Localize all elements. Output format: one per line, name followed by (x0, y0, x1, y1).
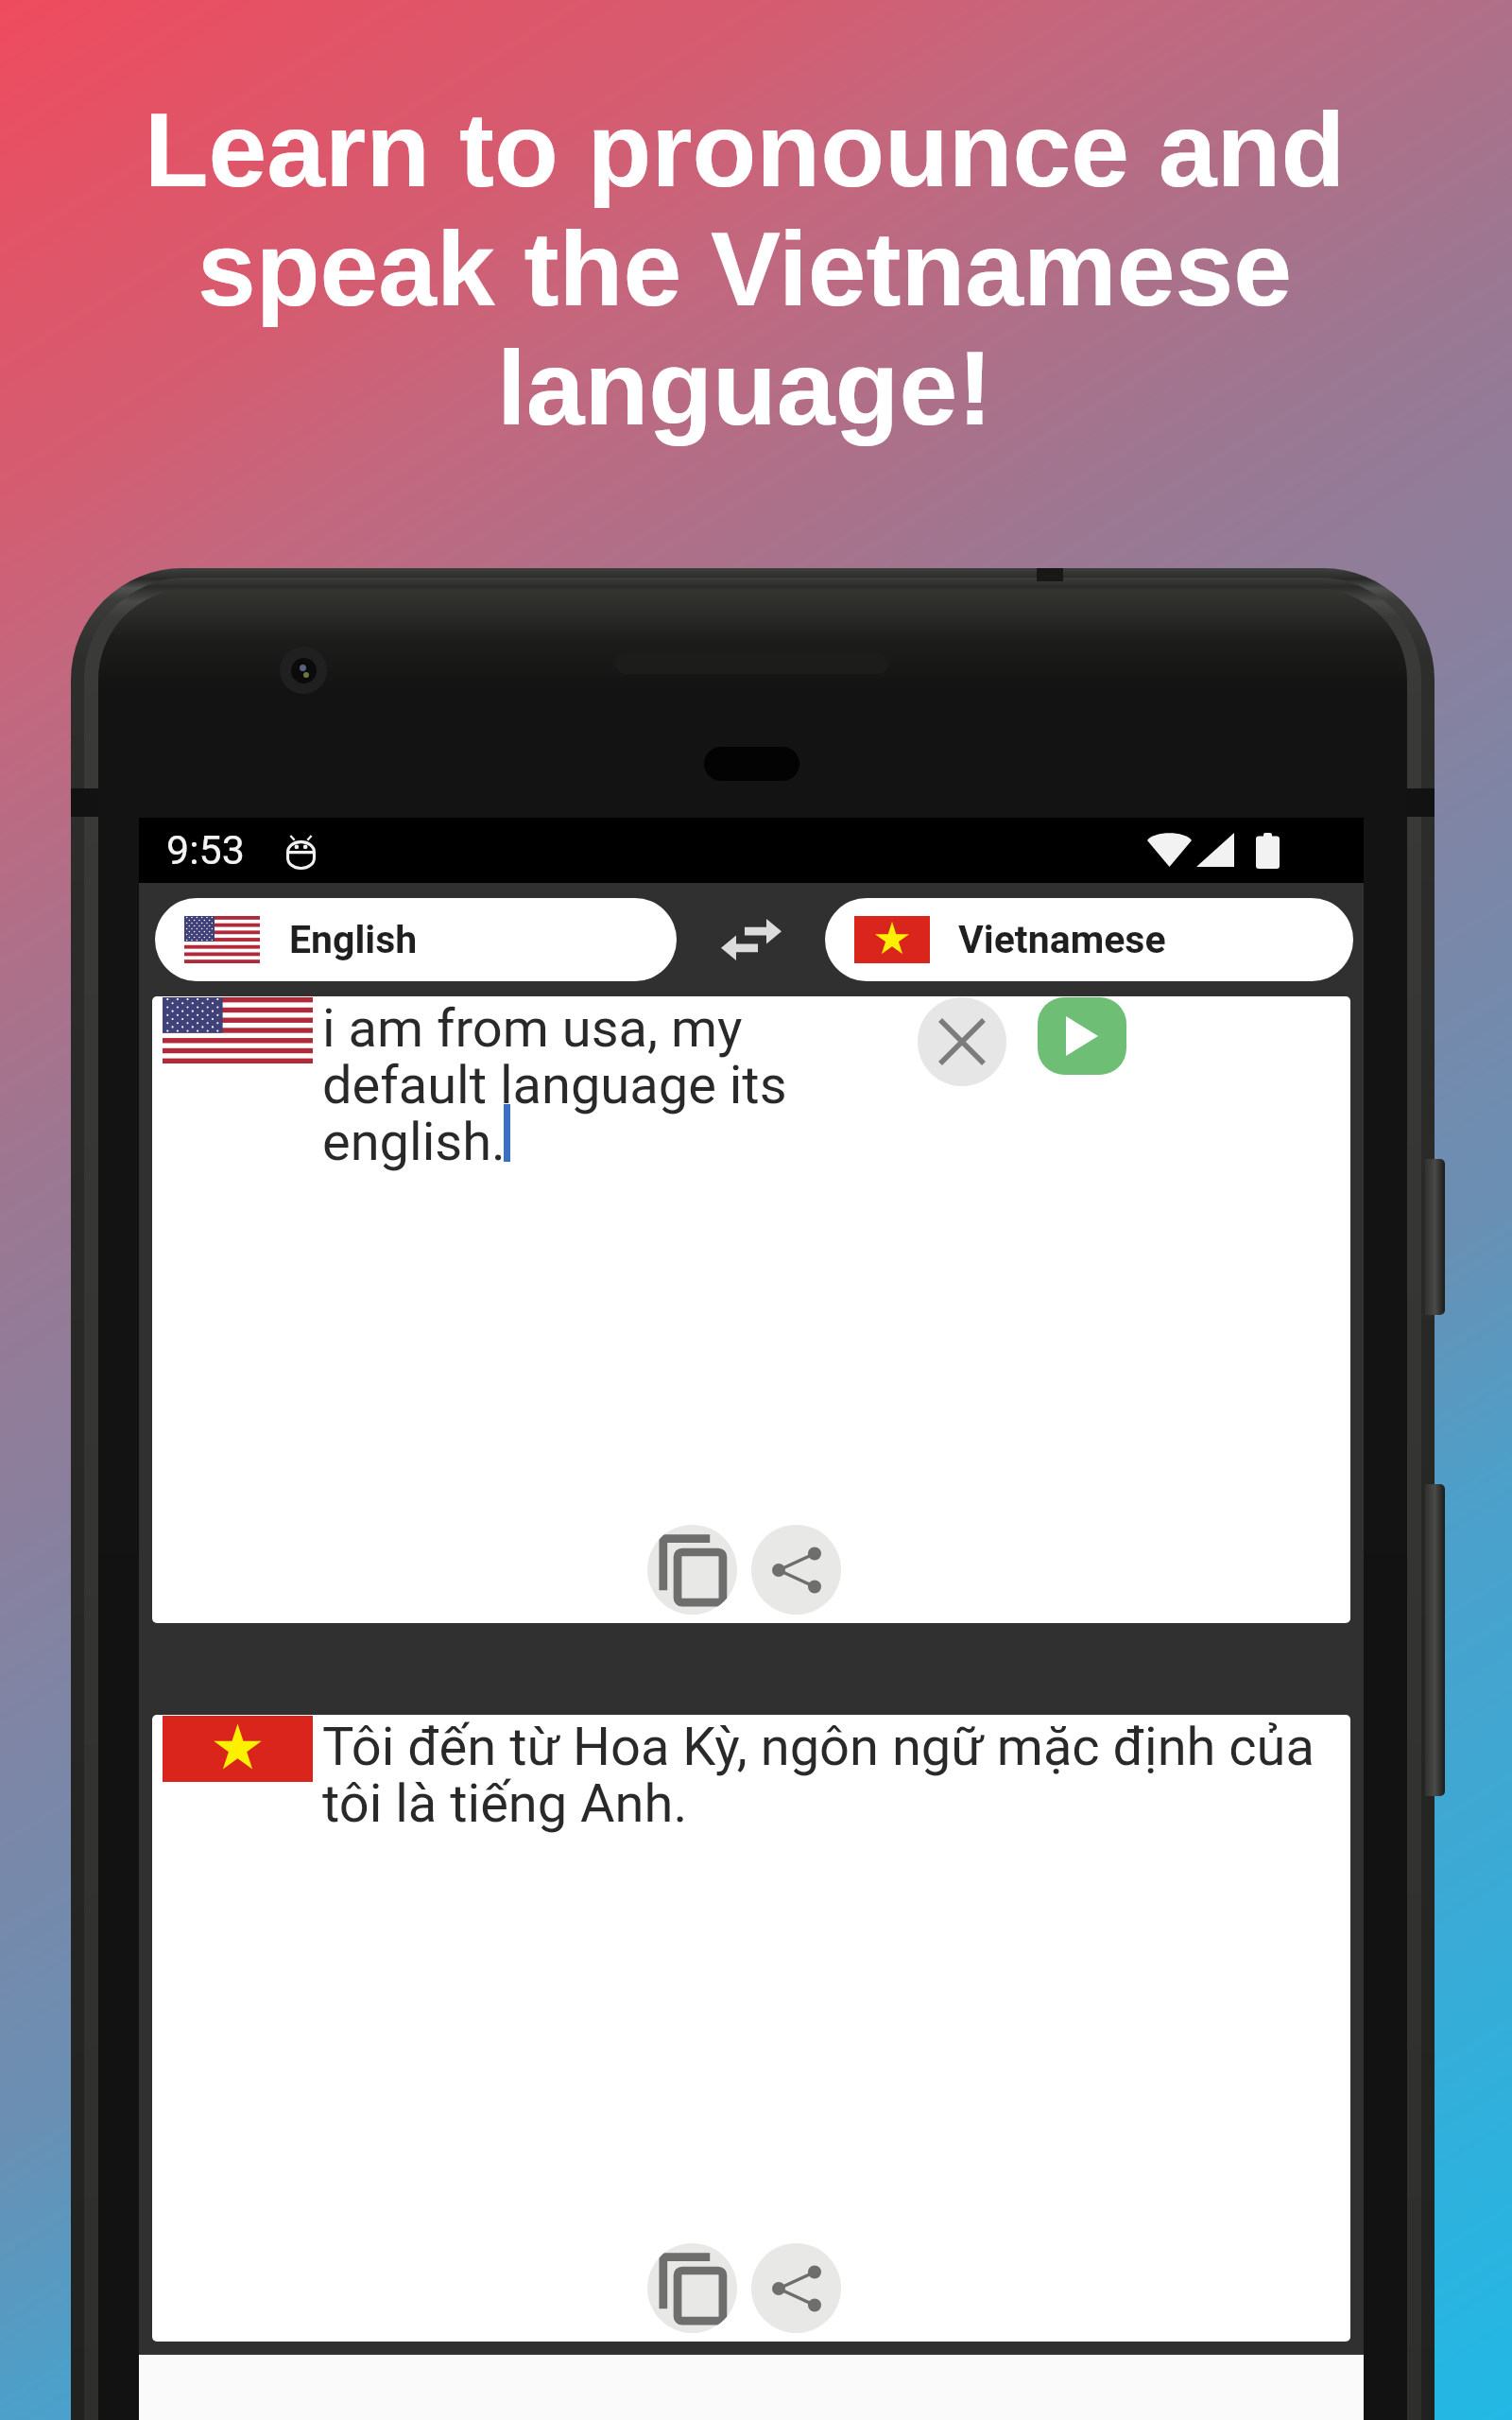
button[interactable]: Copy text (647, 2243, 737, 2333)
staticText: Vietnamese (958, 917, 1166, 962)
button[interactable]: Share text (751, 1525, 841, 1615)
staticText: English (289, 917, 418, 962)
staticText: Learn to pronounce and speak the Vietnam… (45, 92, 1444, 447)
button[interactable]: Clear text (918, 997, 1006, 1086)
staticText: Tôi đến từ Hoa Kỳ, ngôn ngữ mặc định của… (322, 1716, 1333, 1834)
button[interactable]: English (155, 898, 677, 981)
staticText: 9:53 (166, 826, 245, 873)
button[interactable]: Vietnamese (825, 898, 1353, 981)
button[interactable]: Play pronunciation (1038, 997, 1126, 1075)
staticText: i am from usa, my default language its e… (322, 997, 804, 1172)
button[interactable]: Share text (751, 2243, 841, 2333)
button[interactable]: Swap languages (677, 898, 825, 981)
button[interactable]: Copy text (647, 1525, 737, 1615)
